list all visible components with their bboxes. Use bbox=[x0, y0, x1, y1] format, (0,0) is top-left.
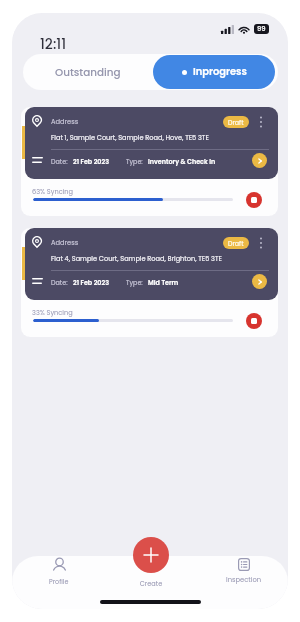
staticText: Date: bbox=[51, 157, 68, 166]
staticText: Type: bbox=[126, 157, 143, 166]
other: More options bbox=[259, 116, 263, 128]
staticText: Draft bbox=[228, 239, 244, 248]
staticText: Mid Term bbox=[148, 278, 179, 287]
staticText: Flat 4, Sample Court, Sample Road, Brigh… bbox=[51, 254, 222, 263]
staticText: Address bbox=[51, 117, 79, 126]
staticText: 99 bbox=[257, 24, 266, 34]
button[interactable]: Inprogress bbox=[153, 55, 275, 89]
button[interactable]: Address bbox=[25, 228, 278, 300]
button[interactable]: Address bbox=[25, 107, 278, 179]
staticText: 33% Syncing bbox=[32, 308, 73, 317]
staticText: Create bbox=[128, 579, 174, 588]
button[interactable]: Inspection bbox=[214, 558, 274, 590]
staticText: Profile bbox=[49, 577, 69, 586]
button[interactable]: Profile bbox=[36, 558, 82, 590]
staticText: 63% Syncing bbox=[32, 187, 73, 196]
button[interactable]: Outstanding bbox=[23, 54, 153, 90]
staticText: Address bbox=[51, 238, 79, 247]
button[interactable]: Stop sync bbox=[246, 192, 262, 208]
staticText: Type: bbox=[126, 278, 143, 287]
staticText: 12:11 bbox=[40, 34, 67, 53]
staticText: 21 Feb 2023 bbox=[73, 157, 109, 166]
staticText: Inspection bbox=[226, 575, 262, 584]
staticText: Outstanding bbox=[55, 65, 121, 80]
button[interactable]: Open job bbox=[252, 274, 267, 289]
button[interactable]: Create bbox=[133, 537, 169, 573]
staticText: Draft bbox=[228, 118, 244, 127]
staticText: Inventory & Check In bbox=[148, 157, 216, 166]
button[interactable]: Open job bbox=[252, 153, 267, 168]
other: More options bbox=[259, 237, 263, 249]
staticText: Flat 1, Sample Court, Sample Road, Hove,… bbox=[51, 133, 209, 142]
staticText: Date: bbox=[51, 278, 68, 287]
staticText: 21 Feb 2023 bbox=[73, 278, 109, 287]
staticText: Inprogress bbox=[193, 65, 247, 79]
button[interactable]: Stop sync bbox=[246, 313, 262, 329]
